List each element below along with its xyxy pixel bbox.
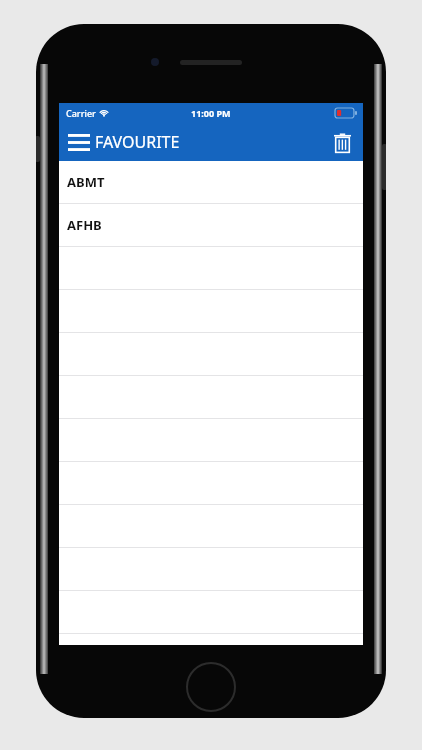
button[interactable]: AFHB xyxy=(59,204,363,247)
button[interactable] xyxy=(59,376,363,419)
button[interactable]: Delete xyxy=(330,128,355,157)
button[interactable] xyxy=(59,462,363,505)
button[interactable] xyxy=(59,333,363,376)
staticText: AFHB xyxy=(67,216,102,234)
button[interactable] xyxy=(59,290,363,333)
button[interactable] xyxy=(59,505,363,548)
button[interactable]: ABMT xyxy=(59,161,363,204)
button[interactable] xyxy=(59,548,363,591)
staticText: ABMT xyxy=(67,173,105,191)
staticText: FAVOURITE xyxy=(95,131,180,153)
staticText: Carrier xyxy=(66,107,96,119)
button[interactable] xyxy=(59,247,363,290)
button[interactable]: Menu xyxy=(65,128,93,157)
button[interactable] xyxy=(59,591,363,634)
button[interactable] xyxy=(59,419,363,462)
staticText: 11:00 PM xyxy=(191,107,231,119)
